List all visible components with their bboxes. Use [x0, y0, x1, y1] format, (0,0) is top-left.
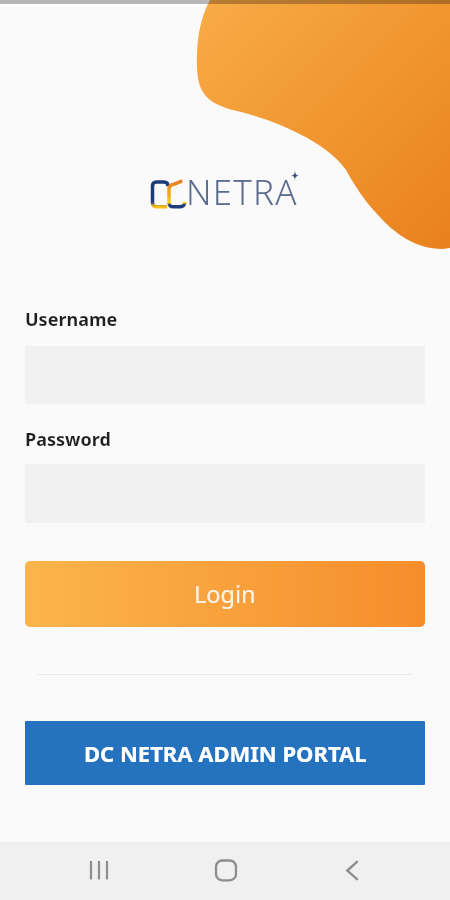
staticText: Login	[194, 578, 256, 610]
button[interactable]: Login	[25, 561, 425, 627]
button[interactable]: Home	[201, 842, 251, 900]
staticText: Username	[25, 307, 118, 332]
staticText: Password	[25, 427, 111, 452]
button[interactable]: Back	[327, 842, 377, 900]
staticText: DC NETRA ADMIN PORTAL	[84, 738, 367, 768]
button[interactable]: Recent apps	[74, 842, 124, 900]
staticText: NETRA	[186, 168, 298, 216]
button[interactable]: DC NETRA ADMIN PORTAL	[25, 721, 425, 785]
